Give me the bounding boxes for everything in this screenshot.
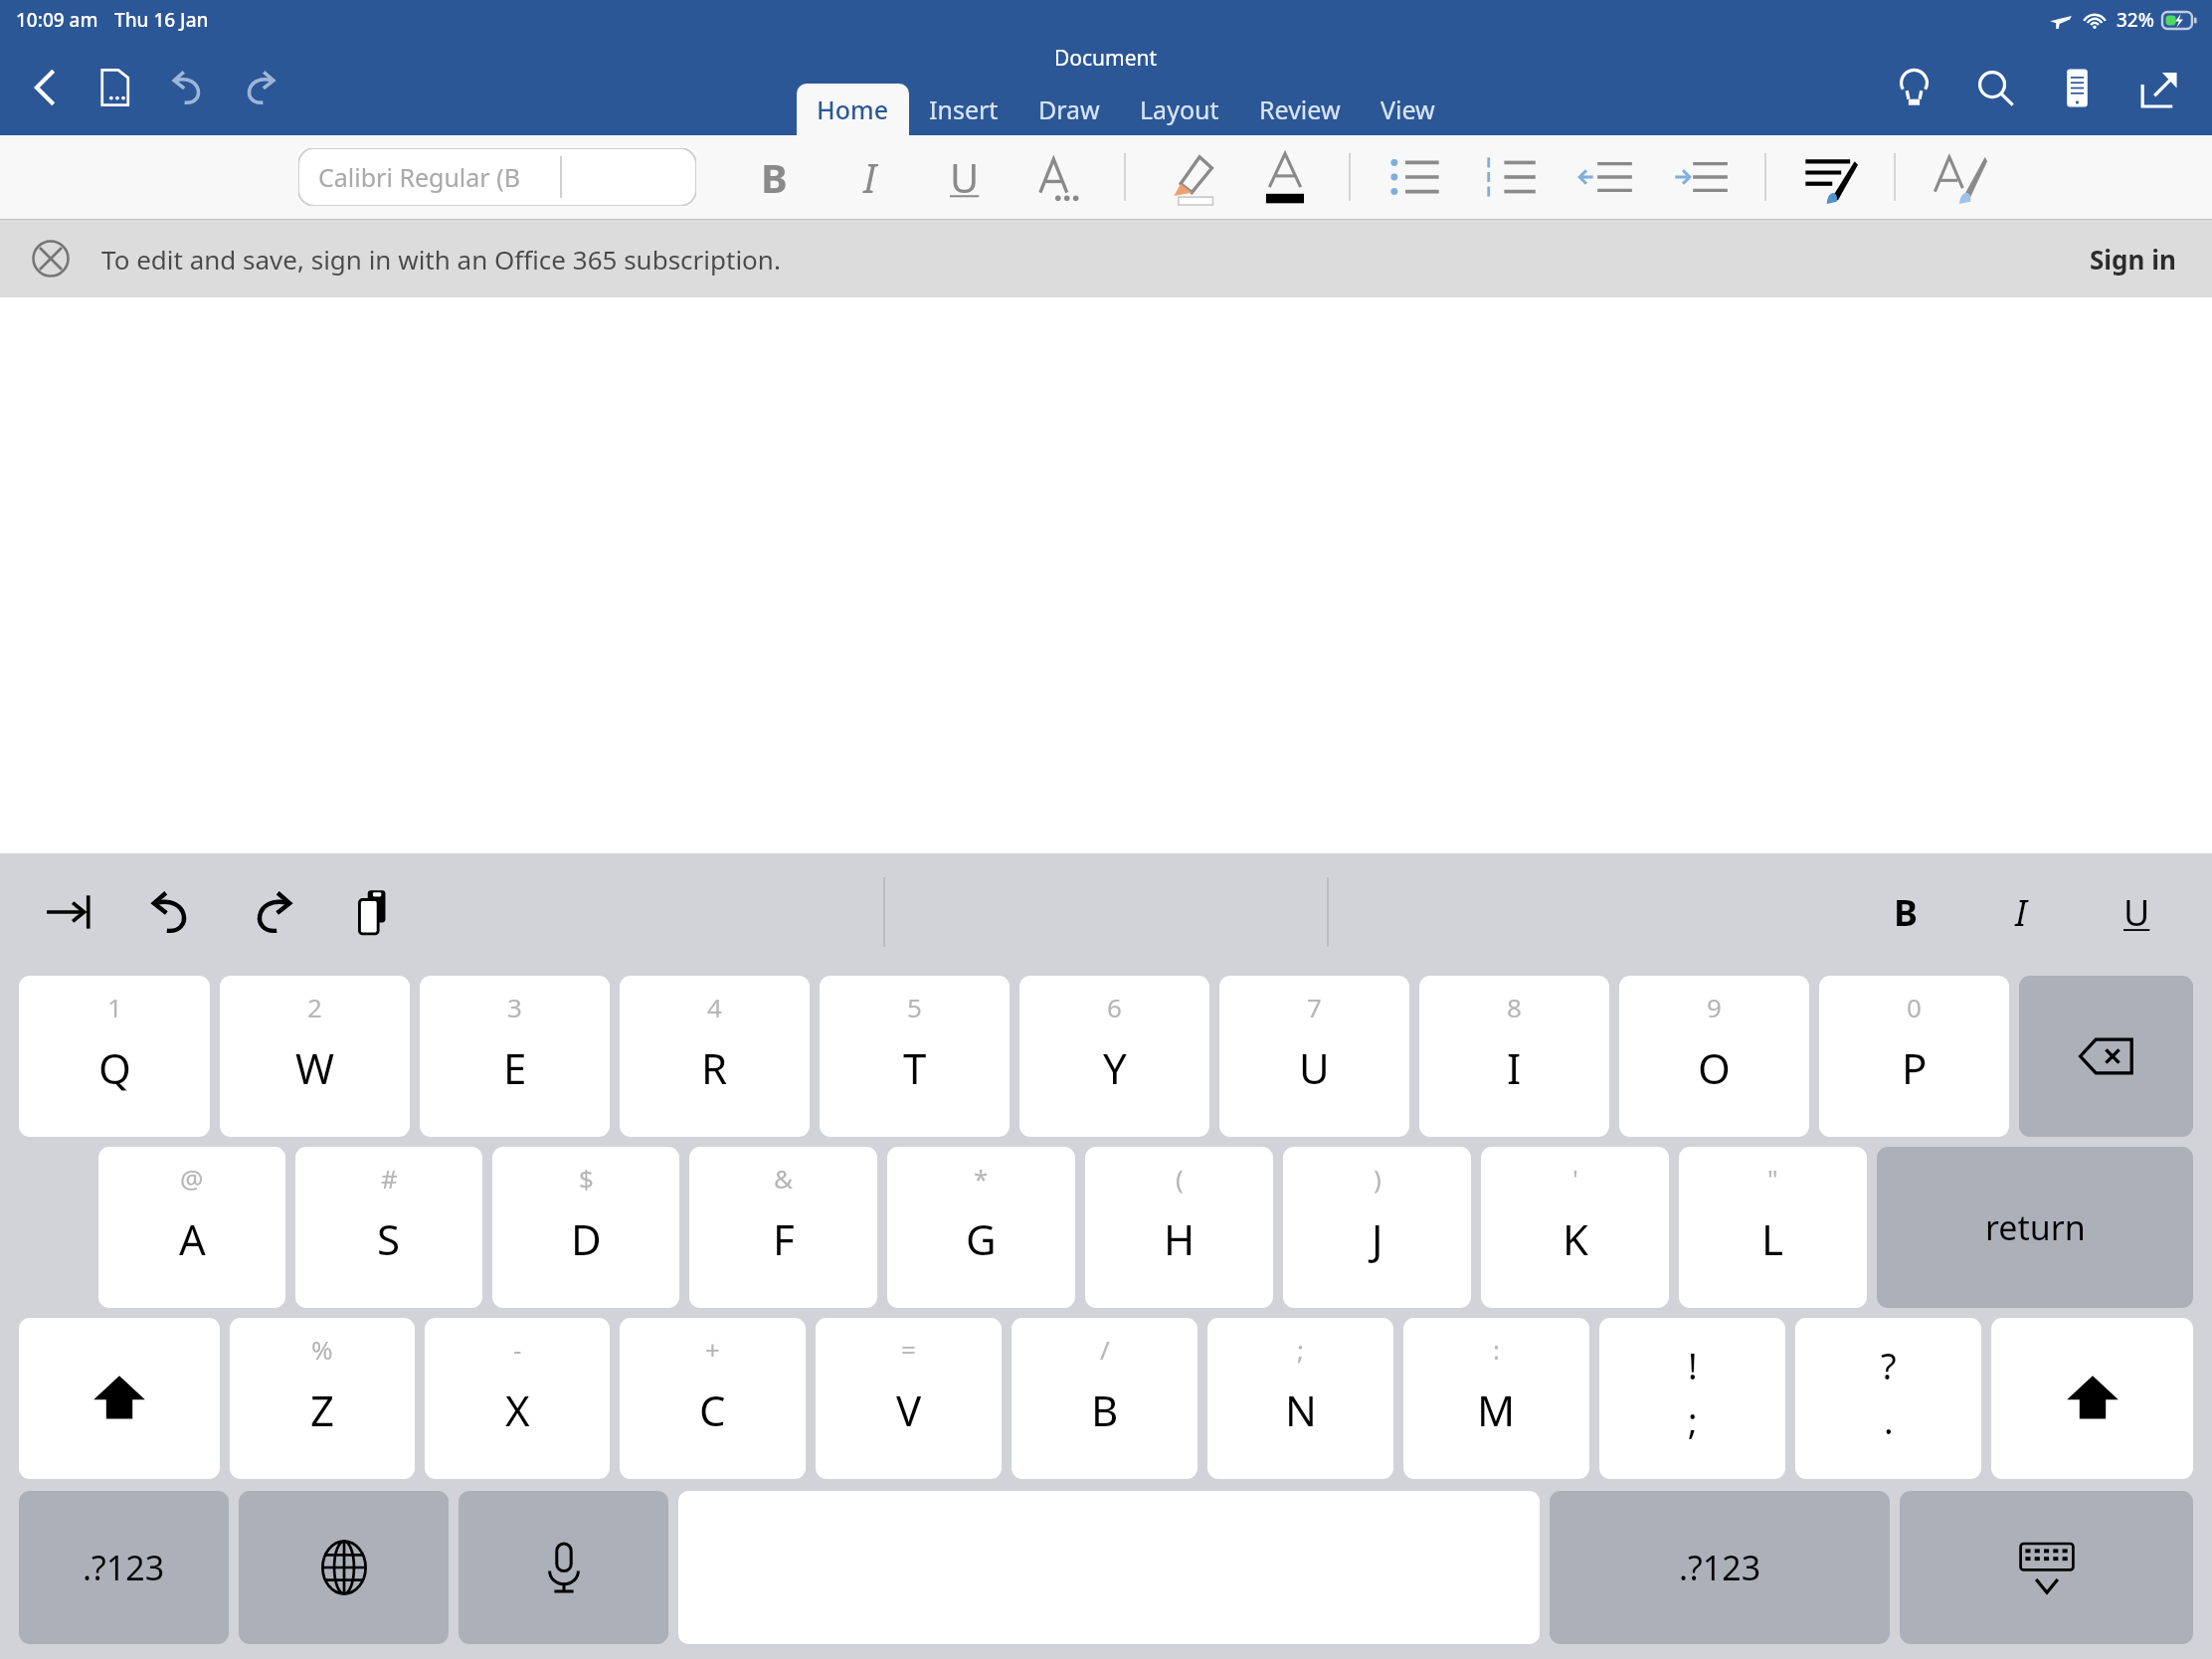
button[interactable]: I <box>822 142 917 212</box>
staticText: 0 <box>1907 990 1922 1024</box>
button[interactable]: = <box>816 1318 1002 1479</box>
staticText: Document <box>1054 44 1158 73</box>
staticText: Sign in <box>2090 242 2176 276</box>
button[interactable]: Backspace <box>2019 976 2193 1137</box>
staticText: Z <box>310 1382 335 1438</box>
button[interactable]: 3 <box>420 976 610 1137</box>
button[interactable]: Font colour <box>1237 142 1333 212</box>
button[interactable]: U <box>917 142 1013 212</box>
staticText: D <box>571 1210 602 1267</box>
button[interactable]: ( <box>1085 1147 1273 1308</box>
button[interactable]: Redo <box>237 876 308 948</box>
button[interactable]: Bullets <box>1367 142 1462 212</box>
staticText: 5 <box>907 990 922 1024</box>
button[interactable]: - <box>425 1318 610 1479</box>
button[interactable]: " <box>1679 1147 1867 1308</box>
button[interactable]: Shift <box>19 1318 220 1479</box>
staticText: To edit and save, sign in with an Office… <box>101 242 781 276</box>
staticText: & <box>774 1161 794 1196</box>
staticText: * <box>974 1161 989 1196</box>
staticText: B <box>1091 1382 1119 1438</box>
staticText: 8 <box>1507 990 1522 1024</box>
staticText: F <box>773 1210 795 1267</box>
button[interactable]: $ <box>492 1147 679 1308</box>
button[interactable]: 9 <box>1619 976 1809 1137</box>
staticText: return <box>1985 1204 2086 1250</box>
button[interactable]: + <box>620 1318 806 1479</box>
button[interactable]: Sign in <box>2082 234 2184 284</box>
button[interactable]: ; <box>1207 1318 1393 1479</box>
button[interactable]: Mobile view <box>2047 58 2107 117</box>
button[interactable]: Insert <box>909 84 1018 135</box>
button[interactable]: Draw <box>1018 84 1120 135</box>
button[interactable]: Tell me <box>1884 58 1943 117</box>
button[interactable]: Paragraph styles <box>1782 142 1878 212</box>
staticText: X <box>505 1382 530 1438</box>
staticText: B <box>761 150 788 204</box>
staticText: @ <box>180 1161 204 1196</box>
staticText: ! <box>1688 1342 1698 1390</box>
staticText: 32% <box>2117 7 2154 33</box>
button[interactable]: I <box>1989 880 2053 944</box>
button[interactable]: @ <box>98 1147 285 1308</box>
button[interactable]: Layout <box>1120 84 1239 135</box>
staticText: ' <box>1572 1161 1578 1196</box>
button[interactable]: Hide keyboard <box>1900 1491 2193 1644</box>
button[interactable]: Dictate <box>459 1491 668 1644</box>
button[interactable]: Search <box>1965 58 2025 117</box>
staticText: L <box>1761 1210 1784 1267</box>
button[interactable]: Font formatting <box>1013 142 1108 212</box>
button[interactable]: 2 <box>220 976 410 1137</box>
button[interactable]: Decrease indent <box>1558 142 1653 212</box>
button[interactable]: Home <box>797 84 909 135</box>
button[interactable]: Highlight <box>1142 142 1237 212</box>
button[interactable]: 5 <box>820 976 1010 1137</box>
staticText: I <box>1507 1039 1522 1096</box>
button[interactable]: ' <box>1481 1147 1669 1308</box>
button[interactable]: Numbering <box>1462 142 1558 212</box>
staticText: View <box>1381 92 1435 126</box>
button[interactable]: Review <box>1239 84 1361 135</box>
button[interactable]: ! <box>1599 1318 1785 1479</box>
button[interactable]: Calibri Regular (B <box>298 148 696 206</box>
button[interactable]: Back <box>18 59 76 116</box>
button[interactable]: Tab <box>34 876 105 948</box>
staticText: C <box>699 1382 726 1438</box>
button[interactable]: Undo <box>159 59 217 116</box>
button[interactable]: Redo <box>231 59 288 116</box>
button[interactable]: Dismiss <box>28 236 74 281</box>
button[interactable]: 4 <box>620 976 810 1137</box>
button[interactable]: / <box>1012 1318 1198 1479</box>
button[interactable]: Paste <box>338 876 410 948</box>
button[interactable]: Shift <box>1991 1318 2193 1479</box>
button[interactable]: 0 <box>1819 976 2009 1137</box>
button[interactable]: return <box>1877 1147 2193 1308</box>
staticText: .?123 <box>83 1545 165 1590</box>
button[interactable]: 1 <box>19 976 210 1137</box>
button[interactable]: 6 <box>1019 976 1209 1137</box>
button[interactable]: Undo <box>135 876 207 948</box>
button[interactable]: : <box>1403 1318 1589 1479</box>
button[interactable]: B <box>1874 880 1937 944</box>
button[interactable]: ? <box>1795 1318 1981 1479</box>
button[interactable]: 8 <box>1419 976 1609 1137</box>
button[interactable]: U <box>2105 880 2168 944</box>
button[interactable]: * <box>887 1147 1075 1308</box>
staticText: 3 <box>507 990 522 1024</box>
button[interactable]: # <box>295 1147 482 1308</box>
button[interactable]: ) <box>1283 1147 1471 1308</box>
button[interactable]: B <box>726 142 822 212</box>
button[interactable]: .?123 <box>1550 1491 1890 1644</box>
button[interactable]: .?123 <box>19 1491 229 1644</box>
button[interactable]: View <box>1361 84 1455 135</box>
button[interactable]: File <box>88 59 145 116</box>
button[interactable]: Share <box>2128 58 2188 117</box>
button[interactable]: Increase indent <box>1653 142 1749 212</box>
button[interactable]: % <box>230 1318 415 1479</box>
staticText: 7 <box>1307 990 1322 1024</box>
button[interactable]: Format painter <box>1912 142 2007 212</box>
button[interactable]: Switch language <box>239 1491 449 1644</box>
button[interactable]: 7 <box>1219 976 1409 1137</box>
button[interactable]: & <box>689 1147 877 1308</box>
